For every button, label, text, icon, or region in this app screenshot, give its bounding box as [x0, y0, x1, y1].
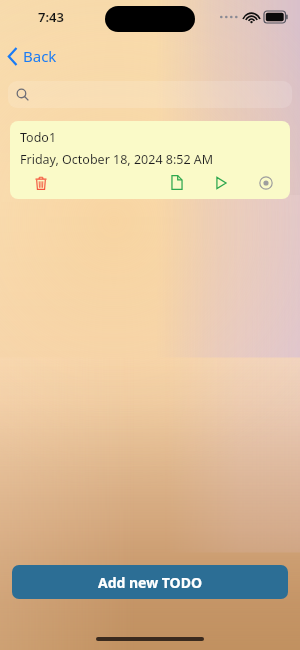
staticText: Add new TODO: [98, 573, 203, 592]
button[interactable]: Document: [168, 172, 186, 193]
staticText: Todo1: [20, 129, 57, 146]
button[interactable]: Play: [212, 173, 230, 193]
staticText: Friday, October 18, 2024 8:52 AM: [20, 151, 214, 168]
staticText: 7:43: [38, 8, 64, 26]
button[interactable]: Delete: [32, 173, 50, 193]
other: Search: [16, 88, 29, 101]
button[interactable]: Stop: [256, 173, 276, 193]
button[interactable]: Back: [0, 42, 69, 70]
staticText: Back: [23, 46, 57, 66]
button[interactable]: Search: [8, 81, 292, 108]
button[interactable]: Todo1: [10, 121, 290, 199]
button[interactable]: Add new TODO: [12, 565, 288, 599]
